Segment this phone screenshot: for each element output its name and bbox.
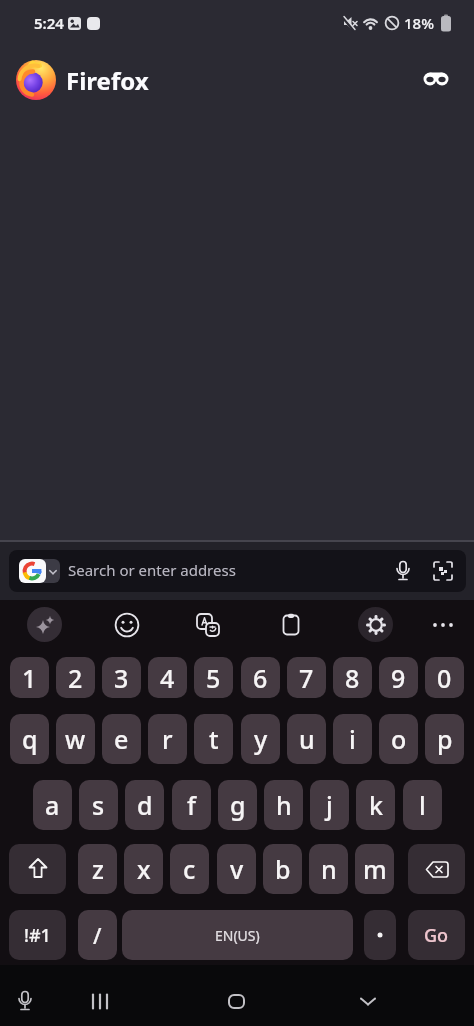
staticText: EN(US) xyxy=(215,926,260,945)
button[interactable] xyxy=(12,988,38,1014)
button[interactable]: 7 xyxy=(287,657,326,698)
staticText: u xyxy=(299,722,315,756)
button[interactable]: e xyxy=(102,714,141,764)
button[interactable]: z xyxy=(78,844,117,894)
button[interactable]: d xyxy=(125,780,164,830)
staticText: c xyxy=(183,852,196,886)
staticText: 18% xyxy=(404,13,434,33)
staticText: t xyxy=(209,722,219,756)
staticText: / xyxy=(93,920,102,950)
button[interactable]: k xyxy=(356,780,395,830)
button[interactable]: 9 xyxy=(379,657,418,698)
button[interactable] xyxy=(392,560,414,582)
button[interactable] xyxy=(19,559,60,583)
staticText: 3 xyxy=(114,661,129,695)
staticText: 8 xyxy=(345,661,360,695)
button[interactable]: 3 xyxy=(102,657,141,698)
staticText: k xyxy=(369,788,383,822)
button[interactable]: !#1 xyxy=(9,910,66,960)
staticText: p xyxy=(437,722,453,756)
button[interactable]: i xyxy=(333,714,372,764)
staticText: b xyxy=(275,852,291,886)
staticText: w xyxy=(65,722,86,756)
staticText: !#1 xyxy=(24,923,51,948)
button[interactable]: f xyxy=(172,780,211,830)
staticText: 1 xyxy=(22,661,37,695)
staticText: Search or enter address xyxy=(68,560,236,580)
staticText: 9 xyxy=(391,661,406,695)
staticText: o xyxy=(391,722,407,756)
staticText: d xyxy=(137,788,153,822)
button[interactable] xyxy=(191,608,225,642)
staticText: m xyxy=(363,852,387,886)
button[interactable]: v xyxy=(217,844,256,894)
button[interactable]: 1 xyxy=(10,657,49,698)
button[interactable] xyxy=(433,561,453,581)
button[interactable] xyxy=(428,610,458,640)
button[interactable]: Search or enter address xyxy=(9,550,466,592)
staticText: l xyxy=(419,788,426,822)
staticText: z xyxy=(92,852,104,886)
staticText: h xyxy=(276,788,292,822)
button[interactable]: h xyxy=(264,780,303,830)
staticText: Go xyxy=(424,923,449,948)
button[interactable] xyxy=(408,844,465,894)
button[interactable]: 6 xyxy=(241,657,280,698)
button[interactable]: Go xyxy=(408,910,465,960)
button[interactable]: o xyxy=(379,714,418,764)
button[interactable] xyxy=(274,608,308,642)
button[interactable] xyxy=(222,987,250,1015)
staticText: j xyxy=(326,788,333,822)
button[interactable] xyxy=(364,910,396,960)
button[interactable]: w xyxy=(56,714,95,764)
staticText: r xyxy=(162,722,173,756)
button[interactable]: g xyxy=(218,780,257,830)
button[interactable]: 5 xyxy=(194,657,233,698)
button[interactable] xyxy=(354,987,382,1015)
button[interactable]: m xyxy=(355,844,394,894)
staticText: 2 xyxy=(68,661,83,695)
button[interactable]: q xyxy=(10,714,49,764)
staticText: Firefox xyxy=(66,64,149,97)
button[interactable] xyxy=(27,607,62,642)
button[interactable] xyxy=(110,608,144,642)
staticText: 0 xyxy=(437,661,452,695)
staticText: a xyxy=(45,788,60,822)
staticText: q xyxy=(22,722,38,756)
button[interactable]: / xyxy=(78,910,117,960)
staticText: g xyxy=(230,788,246,822)
button[interactable]: x xyxy=(124,844,163,894)
staticText: f xyxy=(187,788,196,822)
staticText: x xyxy=(137,852,151,886)
button[interactable]: 8 xyxy=(333,657,372,698)
staticText: 4 xyxy=(160,661,175,695)
button[interactable]: p xyxy=(425,714,464,764)
button[interactable]: b xyxy=(263,844,302,894)
staticText: 5:24 xyxy=(34,13,64,33)
button[interactable] xyxy=(423,70,449,88)
button[interactable] xyxy=(86,987,114,1015)
button[interactable]: 2 xyxy=(56,657,95,698)
button[interactable]: y xyxy=(241,714,280,764)
button[interactable]: t xyxy=(194,714,233,764)
staticText: 6 xyxy=(253,661,268,695)
button[interactable]: l xyxy=(403,780,442,830)
button[interactable] xyxy=(358,607,393,642)
button[interactable]: EN(US) xyxy=(122,910,353,960)
staticText: 7 xyxy=(299,661,314,695)
button[interactable]: r xyxy=(148,714,187,764)
button[interactable]: n xyxy=(309,844,348,894)
staticText: e xyxy=(114,722,129,756)
button[interactable] xyxy=(9,844,66,894)
staticText: i xyxy=(349,722,356,756)
button[interactable]: a xyxy=(33,780,72,830)
button[interactable]: c xyxy=(170,844,209,894)
button[interactable]: 0 xyxy=(425,657,464,698)
staticText: 5 xyxy=(206,661,221,695)
staticText: v xyxy=(230,852,244,886)
button[interactable]: 4 xyxy=(148,657,187,698)
staticText: s xyxy=(92,788,105,822)
button[interactable]: s xyxy=(79,780,118,830)
button[interactable]: j xyxy=(310,780,349,830)
button[interactable]: u xyxy=(287,714,326,764)
